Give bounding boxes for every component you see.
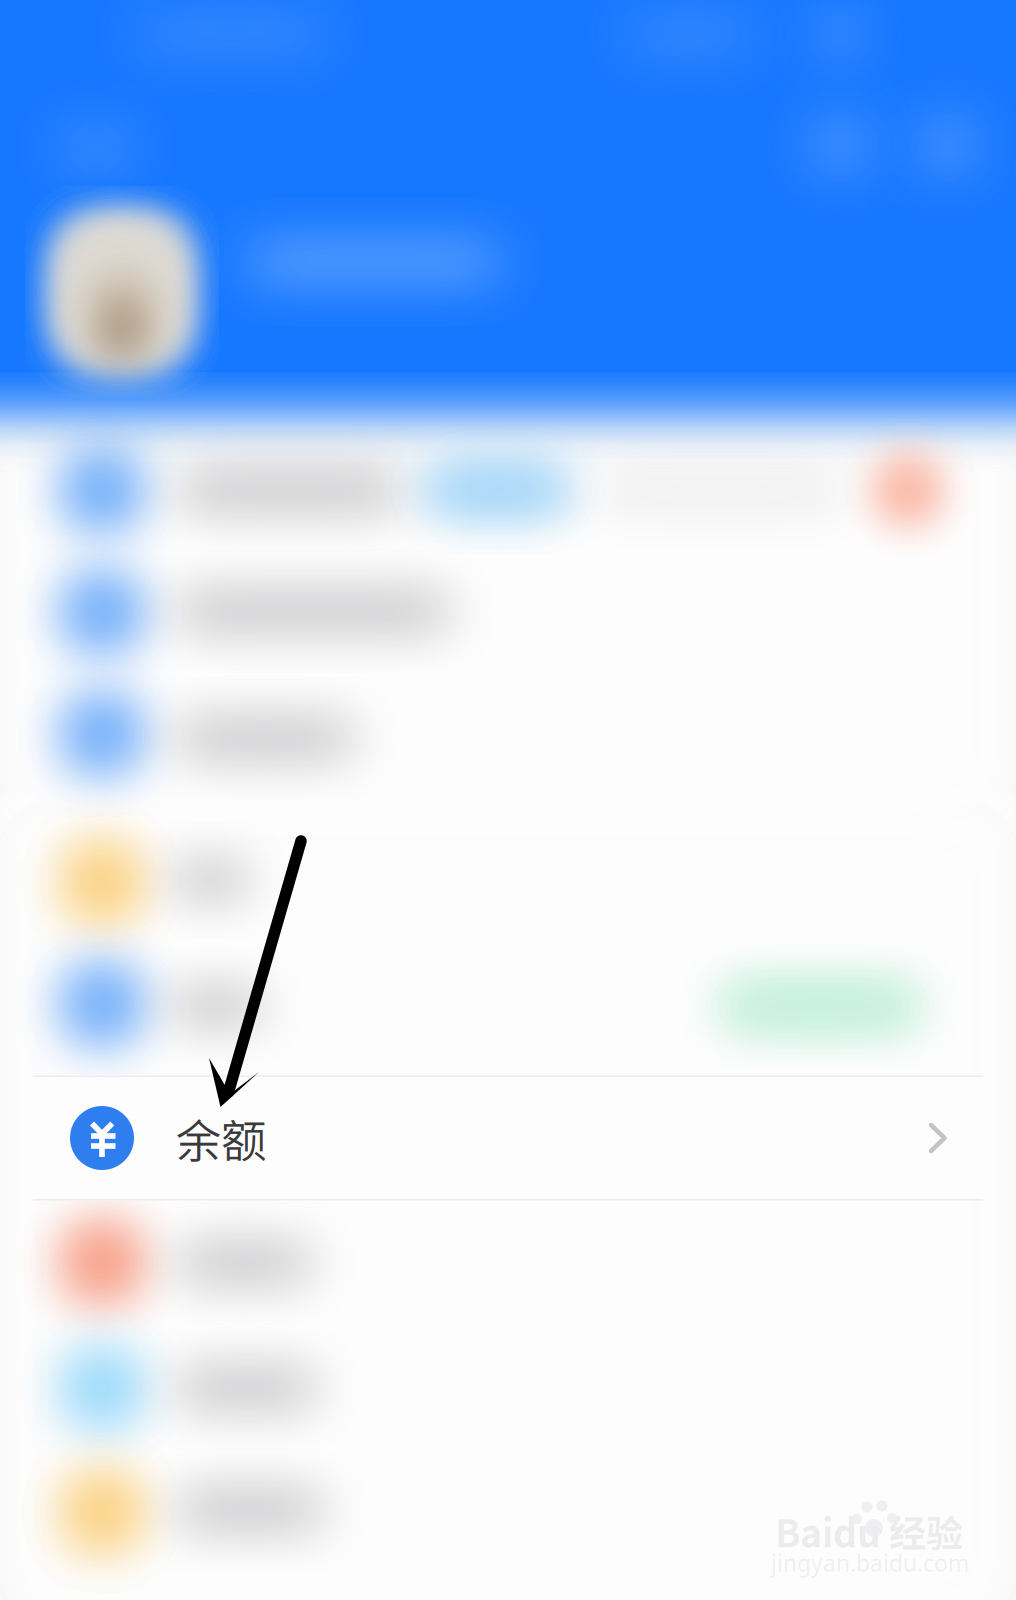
button[interactable]: 余额 bbox=[33, 1075, 983, 1200]
staticText: Baidu 经验 bbox=[775, 1504, 963, 1558]
staticText: 余额 bbox=[176, 1105, 266, 1171]
staticText: jingyan.baidu.com bbox=[771, 1548, 969, 1578]
